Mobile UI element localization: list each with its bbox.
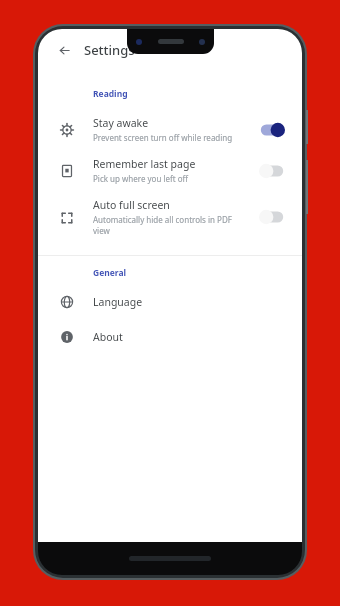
- button[interactable]: About: [38, 319, 302, 354]
- staticText: Pick up where you left off: [93, 173, 189, 184]
- button[interactable]: Back: [51, 37, 77, 63]
- button[interactable]: Auto full screen: [38, 191, 302, 243]
- button[interactable]: Toggle on: [258, 121, 286, 139]
- button[interactable]: Stay awake: [38, 109, 302, 150]
- staticText: Reading: [93, 88, 128, 100]
- staticText: About: [93, 330, 123, 344]
- staticText: Language: [93, 295, 143, 309]
- button[interactable]: Toggle off: [258, 162, 286, 180]
- staticText: Settings: [84, 41, 135, 59]
- staticText: Stay awake: [93, 116, 149, 130]
- button[interactable]: Toggle off: [258, 208, 286, 226]
- staticText: Automatically hide all controls in PDF v…: [93, 214, 250, 236]
- button[interactable]: Language: [38, 284, 302, 319]
- staticText: Remember last page: [93, 157, 196, 171]
- button[interactable]: Remember last page: [38, 150, 302, 191]
- staticText: General: [93, 267, 127, 279]
- staticText: Auto full screen: [93, 198, 170, 212]
- staticText: Prevent screen turn off while reading: [93, 132, 233, 143]
